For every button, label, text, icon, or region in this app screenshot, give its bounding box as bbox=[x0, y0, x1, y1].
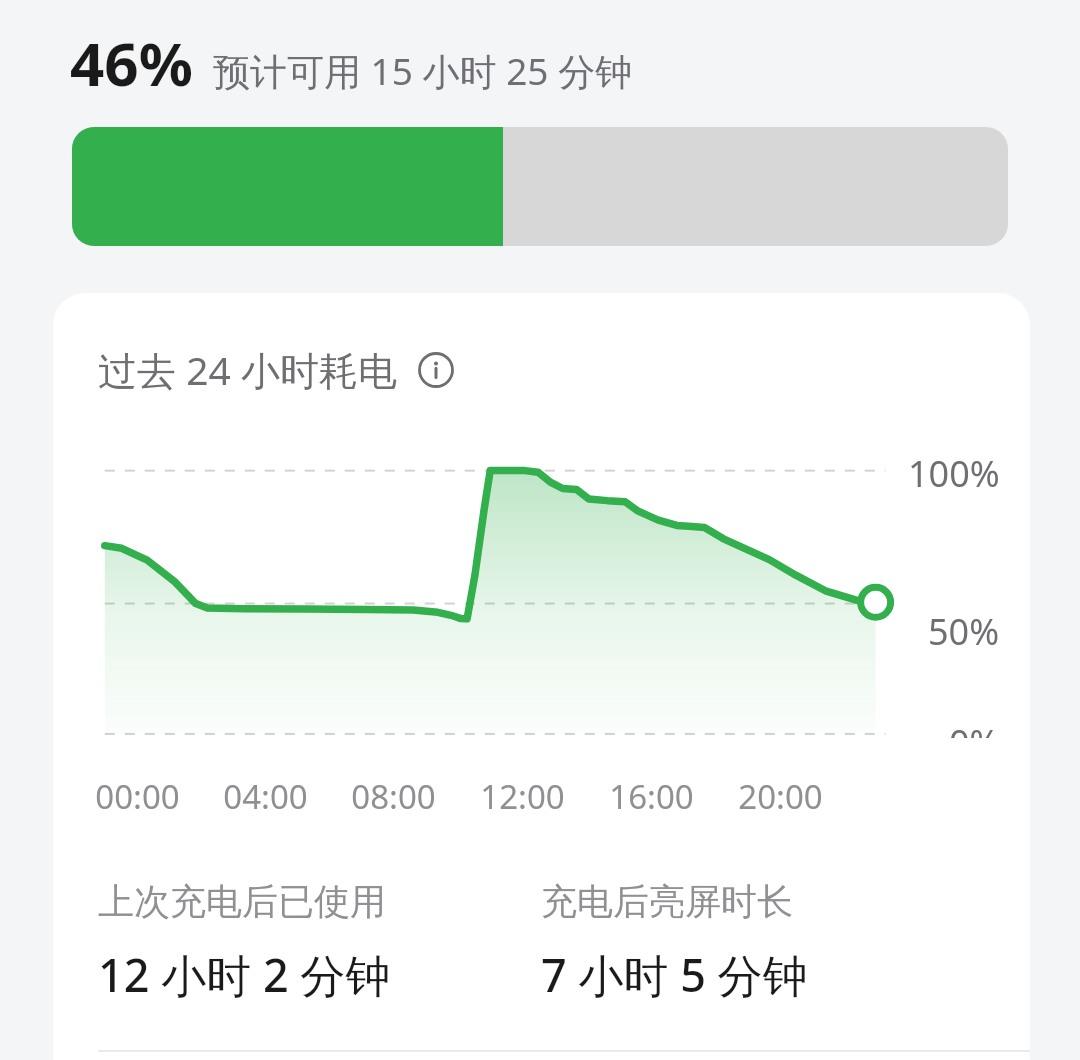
staticText: 充电后亮屏时长 bbox=[541, 879, 793, 924]
staticText: 46% bbox=[70, 22, 193, 104]
staticText: 20:00 bbox=[738, 774, 823, 819]
staticText: 100% bbox=[908, 449, 1000, 498]
button[interactable]: 上次充电后已使用 bbox=[98, 879, 541, 1005]
staticText: 04:00 bbox=[223, 774, 308, 819]
button[interactable]: 过去 24 小时耗电 bbox=[98, 343, 455, 396]
button[interactable]: 耗电说明 bbox=[417, 351, 455, 389]
staticText: 16:00 bbox=[609, 774, 694, 819]
staticText: 预计可用 15 小时 25 分钟 bbox=[213, 45, 633, 96]
staticText: 12:00 bbox=[480, 774, 565, 819]
staticText: 00:00 bbox=[95, 774, 180, 819]
button[interactable] bbox=[72, 127, 1008, 246]
button[interactable]: 充电后亮屏时长 bbox=[541, 879, 1030, 1005]
staticText: 7 小时 5 分钟 bbox=[541, 944, 808, 1005]
staticText: 0% bbox=[949, 718, 1000, 738]
staticText: 08:00 bbox=[351, 774, 436, 819]
staticText: 上次充电后已使用 bbox=[98, 879, 386, 924]
staticText: 50% bbox=[928, 607, 1000, 656]
staticText: 12 小时 2 分钟 bbox=[98, 944, 391, 1005]
staticText: 过去 24 小时耗电 bbox=[98, 343, 397, 396]
